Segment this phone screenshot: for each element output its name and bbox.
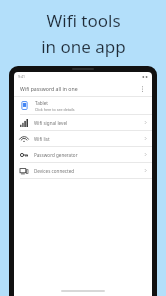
staticText: 9:41 <box>18 74 25 79</box>
staticText: Devices connected <box>34 168 75 174</box>
staticText: Wifi list <box>34 136 50 142</box>
staticText: Tablet <box>35 100 49 106</box>
staticText: Wifi tools <box>46 9 121 32</box>
button[interactable]: More options <box>137 84 147 94</box>
button[interactable]: Wifi password all in one <box>14 81 152 96</box>
button[interactable]: Wifi list <box>14 131 152 146</box>
button[interactable]: Password generator <box>14 147 152 162</box>
button[interactable]: Tablet <box>14 97 152 114</box>
button[interactable]: Wifi signal level <box>14 115 152 130</box>
staticText: Click here to see details <box>35 107 75 112</box>
staticText: Wifi password all in one <box>20 85 78 92</box>
staticText: Wifi signal level <box>34 120 68 126</box>
staticText: in one app <box>41 35 126 58</box>
button[interactable]: Devices connected <box>14 163 152 178</box>
staticText: Password generator <box>34 152 78 158</box>
